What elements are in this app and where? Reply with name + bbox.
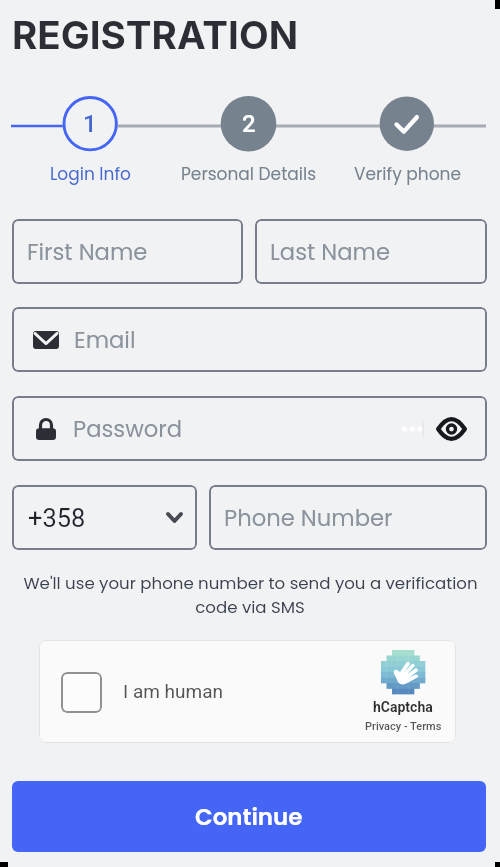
staticText: 2: [242, 110, 256, 138]
staticText: 1: [83, 110, 97, 138]
staticText: +358: [28, 503, 86, 533]
button[interactable]: First Name: [12, 219, 243, 284]
staticText: Email: [74, 324, 136, 356]
staticText: I am human: [123, 680, 224, 702]
button[interactable]: Continue: [12, 781, 486, 852]
staticText: Login Info: [50, 162, 131, 186]
staticText: Privacy - Terms: [365, 720, 442, 733]
staticText: code via SMS: [195, 596, 305, 619]
staticText: Continue: [195, 801, 303, 833]
staticText: Last Name: [270, 236, 391, 268]
staticText: We'll use your phone number to send you …: [23, 572, 478, 595]
staticText: hCaptcha: [373, 699, 433, 715]
button[interactable]: Phone Number: [209, 485, 487, 550]
staticText: Phone Number: [224, 502, 393, 534]
button[interactable]: Email: [12, 307, 487, 372]
button[interactable]: Last Name: [255, 219, 487, 284]
button[interactable]: Show password: [436, 417, 467, 441]
button[interactable]: Password: [12, 396, 487, 461]
button[interactable]: I am human checkbox: [61, 672, 102, 713]
staticText: REGISTRATION: [12, 12, 299, 59]
staticText: Personal Details: [181, 162, 317, 186]
staticText: Verify phone: [354, 162, 461, 186]
button[interactable]: Country code: [12, 485, 197, 550]
staticText: Password: [73, 413, 183, 445]
staticText: First Name: [27, 236, 148, 268]
